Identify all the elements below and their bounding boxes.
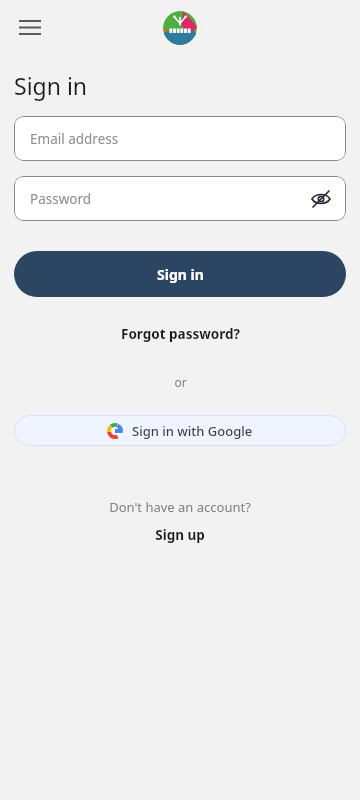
button[interactable]: Email address [14,116,346,161]
staticText: Sign in [14,70,88,101]
button[interactable]: Open navigation menu [10,7,50,47]
staticText: Email address [30,130,119,148]
staticText: Don't have an account? [109,498,251,516]
staticText: Sign in with Google [132,422,253,440]
button[interactable]: Sign in with Google [14,415,346,446]
button[interactable]: Forgot password? [113,323,248,345]
staticText: or [174,374,187,390]
button[interactable]: Show password [304,182,338,216]
button[interactable]: Password [14,176,346,221]
button[interactable]: Sign in [14,251,346,297]
button[interactable]: Sign up [145,524,215,546]
staticText: Password [30,190,92,208]
staticText: Sign up [155,526,205,544]
staticText: Forgot password? [121,325,240,343]
button[interactable]: Khulab logo [163,11,197,45]
staticText: Sign in [157,265,204,284]
